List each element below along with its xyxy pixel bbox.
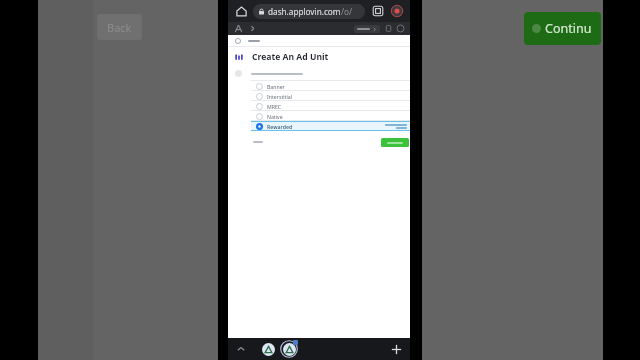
staticText: Continue [545,20,593,37]
staticText: MREC [267,103,282,110]
button[interactable]: Text size [233,23,244,34]
staticText: dash.applovin.com [268,6,341,17]
button[interactable]: MREC [251,101,410,111]
staticText: Rewarded [267,123,293,130]
button[interactable]: Continue [524,12,601,45]
button[interactable]: New tab [388,341,404,357]
button[interactable]: Forward [248,24,257,33]
button[interactable]: Tab 1 [259,340,277,358]
button[interactable] [354,25,380,33]
button[interactable] [251,139,265,145]
button[interactable]: Banner [251,81,410,91]
button[interactable]: Interstitial [251,91,410,101]
button[interactable]: Copy [384,24,393,33]
button[interactable]: Record [389,3,405,19]
button[interactable]: Expand tab switcher [234,342,248,356]
button[interactable]: More options [396,24,405,33]
staticText: Interstitial [267,93,293,100]
button[interactable] [381,138,409,147]
staticText: Native [267,113,283,120]
button[interactable]: Native [251,111,410,121]
button[interactable]: Rewarded [251,121,410,131]
button[interactable]: Back [97,14,142,40]
staticText: Back [107,20,132,35]
staticText: Create An Ad Unit [252,51,329,63]
button[interactable]: Home [233,3,249,19]
button[interactable]: Share [370,3,386,19]
staticText: /o/me [341,6,361,17]
staticText: Banner [267,83,285,90]
button[interactable]: Current tab [280,340,298,358]
button[interactable]: dash.applovin.com [253,4,365,19]
